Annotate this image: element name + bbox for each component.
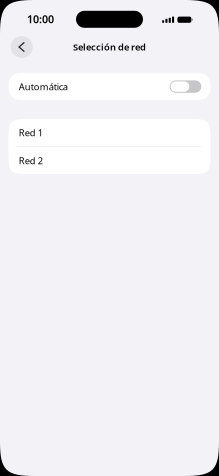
- button[interactable]: Automática: [8, 73, 210, 100]
- staticText: Red 1: [19, 126, 43, 139]
- staticText: 10:00: [27, 12, 54, 26]
- staticText: Selección de red: [73, 41, 146, 53]
- staticText: Red 2: [19, 154, 43, 167]
- button[interactable]: Red 2: [8, 147, 210, 174]
- button[interactable]: Back: [11, 36, 33, 58]
- button[interactable]: Red 1: [8, 119, 210, 146]
- staticText: Automática: [19, 80, 68, 93]
